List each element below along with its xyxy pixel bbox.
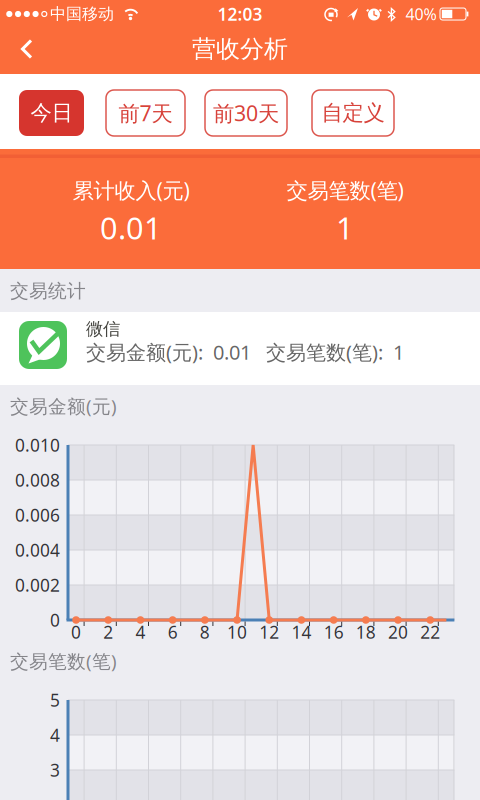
staticText: 40% — [405, 3, 436, 25]
staticText: 3 — [50, 758, 60, 781]
staticText: 5 — [50, 688, 60, 711]
staticText: 0.006 — [15, 503, 60, 526]
staticText: 0.01 — [100, 207, 162, 248]
button[interactable]: 自定义 — [312, 90, 394, 136]
staticText: 4 — [135, 620, 145, 643]
staticText: 10 — [227, 620, 247, 643]
staticText: 0.010 — [15, 433, 60, 456]
staticText: 22 — [420, 620, 440, 643]
staticText: 14 — [291, 620, 311, 643]
button[interactable]: 前30天 — [205, 90, 287, 136]
staticText: 16 — [324, 620, 344, 643]
staticText: 20 — [388, 620, 408, 643]
staticText: 今日 — [30, 100, 72, 126]
staticText: 前30天 — [213, 99, 279, 127]
staticText: 累计收入(元) — [72, 176, 189, 204]
staticText: 0 — [50, 608, 60, 631]
staticText: 18 — [356, 620, 376, 643]
staticText: 微信 — [86, 318, 120, 340]
button[interactable]: 微信 — [0, 312, 480, 385]
staticText: 交易金额(元): 0.01 — [86, 339, 251, 365]
button[interactable]: Back — [4, 31, 48, 67]
staticText: 交易笔数(笔): 1 — [266, 339, 404, 365]
staticText: 8 — [200, 620, 210, 643]
staticText: 0 — [71, 620, 81, 643]
staticText: 6 — [168, 620, 178, 643]
staticText: 4 — [50, 723, 60, 746]
staticText: 1 — [336, 207, 354, 248]
staticText: 营收分析 — [192, 34, 288, 64]
staticText: 中国移动 — [50, 4, 114, 24]
staticText: 自定义 — [321, 100, 384, 126]
staticText: 0.002 — [15, 573, 60, 596]
staticText: 0.004 — [15, 538, 60, 561]
staticText: 0.008 — [15, 468, 60, 491]
staticText: 12 — [259, 620, 279, 643]
staticText: 12:03 — [217, 2, 262, 25]
staticText: 交易统计 — [10, 279, 86, 302]
button[interactable]: 前7天 — [106, 90, 185, 136]
button[interactable]: 今日 — [19, 90, 84, 136]
staticText: 2 — [103, 620, 113, 643]
staticText: 交易金额(元) — [10, 394, 117, 418]
staticText: 交易笔数(笔) — [10, 649, 117, 673]
staticText: 前7天 — [118, 99, 172, 127]
staticText: 交易笔数(笔) — [286, 176, 403, 204]
